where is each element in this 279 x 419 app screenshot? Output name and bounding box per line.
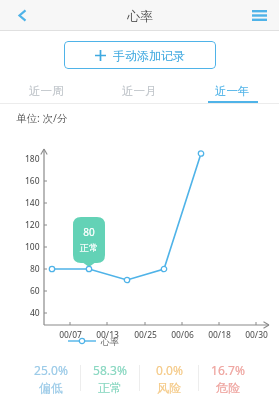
staticText: 单位: 次/分 [16, 111, 68, 125]
staticText: 160 [25, 175, 40, 187]
staticText: 危险 [216, 380, 240, 395]
button[interactable]: 近一月 [93, 78, 186, 103]
staticText: 00/30 [245, 329, 268, 341]
staticText: 手动添加记录 [113, 48, 185, 63]
staticText: 16.7% [211, 362, 245, 378]
staticText: 00/13 [96, 329, 119, 341]
staticText: 近一月 [122, 84, 157, 98]
staticText: 0.0% [156, 362, 183, 378]
staticText: 近一周 [29, 84, 64, 98]
staticText: 00/06 [171, 329, 194, 341]
staticText: 风险 [157, 380, 181, 395]
staticText: 120 [25, 219, 40, 231]
staticText: 00/25 [134, 329, 157, 341]
staticText: 100 [25, 241, 40, 253]
button[interactable]: 16.7% [199, 362, 257, 395]
staticText: 心率 [127, 8, 153, 24]
button[interactable]: Back [0, 0, 44, 31]
staticText: 正常 [98, 380, 122, 395]
button[interactable]: 手动添加记录 [64, 41, 216, 69]
staticText: 80 [83, 225, 95, 239]
staticText: 140 [25, 197, 40, 209]
staticText: 00/18 [208, 329, 231, 341]
staticText: 80 [30, 263, 40, 275]
button[interactable]: Menu [239, 0, 279, 31]
staticText: 60 [30, 285, 40, 297]
staticText: 180 [25, 153, 40, 165]
staticText: 偏低 [39, 380, 63, 395]
staticText: 近一年 [215, 84, 250, 98]
staticText: 正常 [80, 242, 98, 253]
staticText: 心率 [101, 336, 119, 347]
button[interactable]: 近一年 [186, 78, 279, 103]
staticText: 58.3% [93, 362, 127, 378]
button[interactable]: 0.0% [140, 362, 198, 395]
staticText: 40 [30, 307, 40, 319]
button[interactable]: 58.3% [81, 362, 139, 395]
staticText: 25.0% [34, 362, 68, 378]
button[interactable]: 近一周 [0, 78, 93, 103]
button[interactable]: 25.0% [22, 362, 80, 395]
staticText: 00/07 [59, 329, 82, 341]
